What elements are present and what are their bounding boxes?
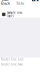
staticText: ▮▮ ▮ (31, 0, 38, 2)
staticText: 9:41 (1, 0, 8, 2)
staticText: Sample row label (7, 11, 22, 18)
button[interactable]: Back (1, 0, 10, 6)
staticText: Back (1, 0, 10, 6)
staticText: Footer line two (1, 63, 23, 66)
staticText: Title (16, 0, 24, 6)
button[interactable]: Sample row label (0, 11, 40, 18)
staticText: Footer line one (1, 58, 24, 61)
